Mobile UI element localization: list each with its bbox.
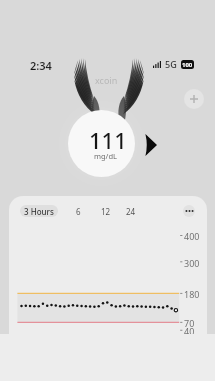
staticText: 24 bbox=[126, 206, 136, 217]
button[interactable]: Add bbox=[184, 89, 204, 109]
staticText: 100 bbox=[182, 61, 193, 69]
staticText: 2:34 bbox=[30, 58, 52, 73]
staticText: xcoin bbox=[95, 74, 118, 86]
staticText: 111 bbox=[89, 125, 127, 155]
staticText: 400 bbox=[184, 230, 200, 242]
staticText: 70 bbox=[184, 317, 195, 329]
staticText: mg/dL bbox=[94, 151, 117, 161]
staticText: 40 bbox=[184, 325, 195, 334]
staticText: 6 bbox=[76, 206, 81, 217]
staticText: 12 bbox=[101, 206, 111, 217]
staticText: 3 Hours bbox=[24, 206, 54, 217]
staticText: 5G bbox=[165, 58, 177, 70]
button[interactable]: 12 bbox=[97, 203, 115, 219]
button[interactable]: 24 bbox=[122, 203, 140, 219]
button[interactable]: 3 Hours bbox=[20, 205, 58, 217]
button[interactable]: 6 bbox=[69, 203, 87, 219]
button[interactable]: More options bbox=[183, 205, 195, 217]
staticText: 180 bbox=[184, 288, 200, 300]
staticText: 300 bbox=[184, 257, 200, 269]
button[interactable]: 111 bbox=[68, 110, 135, 177]
